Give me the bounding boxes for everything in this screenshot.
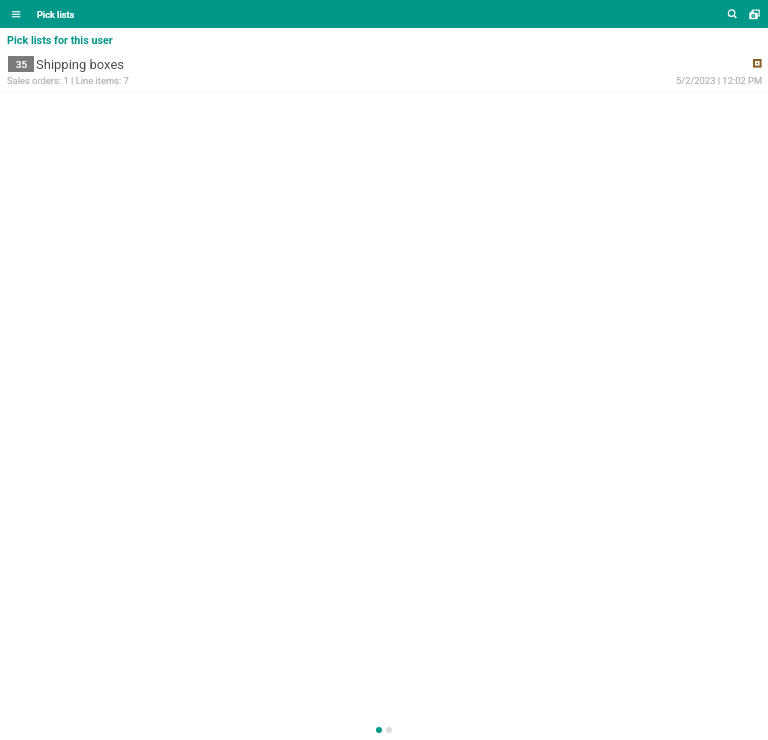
- staticText: Pick lists for this user: [7, 34, 113, 47]
- staticText: Sales orders: 1 | Line items: 7: [7, 75, 129, 86]
- other: Pick list status: [753, 59, 762, 68]
- button[interactable]: Search: [717, 0, 745, 28]
- button[interactable]: Menu: [0, 0, 28, 28]
- staticText: Pick lists: [37, 9, 75, 20]
- staticText: 5/2/2023 | 12:02 PM: [676, 75, 763, 86]
- button[interactable]: 35: [0, 51, 768, 92]
- button[interactable]: Page 1: [376, 727, 382, 733]
- staticText: 35: [16, 59, 27, 70]
- button[interactable]: Page 2: [386, 727, 392, 733]
- staticText: Shipping boxes: [36, 57, 125, 72]
- button[interactable]: Scan barcode: [739, 0, 767, 28]
